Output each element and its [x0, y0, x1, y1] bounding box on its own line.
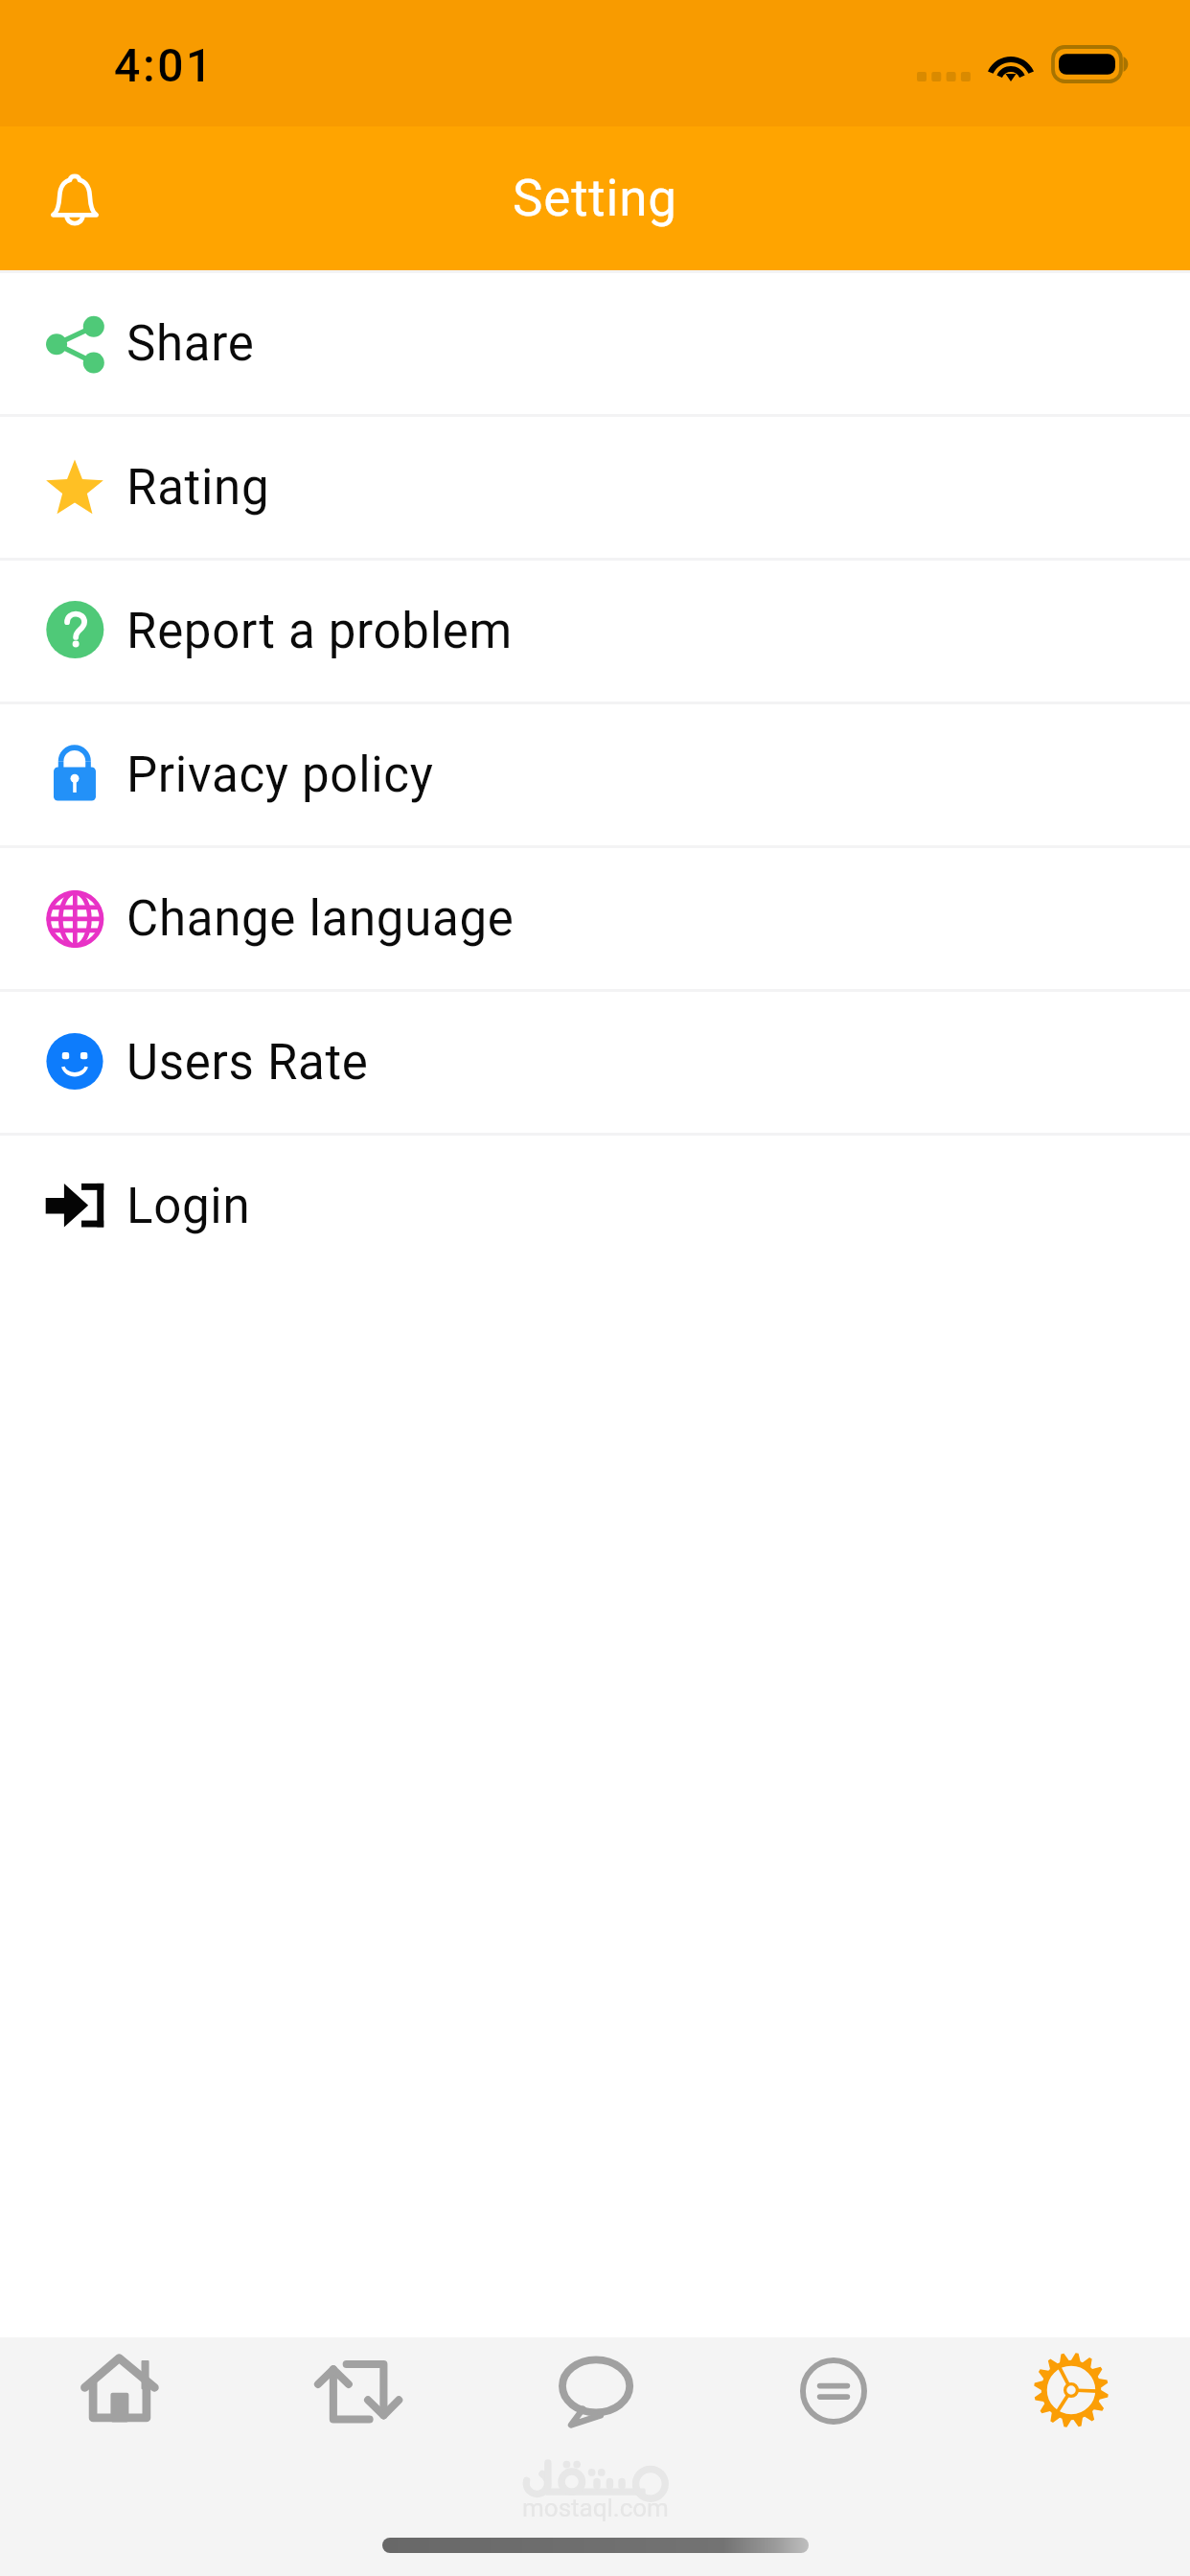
button[interactable]: Share — [0, 273, 1190, 414]
button[interactable]: Notifications — [24, 149, 125, 249]
button[interactable]: Users Rate — [0, 992, 1190, 1133]
button[interactable]: Messages — [477, 2337, 715, 2441]
button[interactable]: Rating — [0, 417, 1190, 558]
staticText: mostaql.com — [522, 2494, 669, 2522]
staticText: Login — [126, 1178, 251, 1235]
staticText: 4:01 — [114, 38, 215, 92]
staticText: Users Rate — [126, 1034, 369, 1092]
button[interactable]: Sync — [239, 2337, 477, 2441]
button[interactable]: Login — [0, 1136, 1190, 1276]
button[interactable]: Home — [0, 2337, 239, 2441]
button[interactable]: Report a problem — [0, 561, 1190, 701]
staticText: Change language — [126, 890, 515, 948]
staticText: Rating — [126, 459, 270, 517]
button[interactable]: Privacy policy — [0, 704, 1190, 845]
staticText: Privacy policy — [126, 747, 434, 804]
staticText: Report a problem — [126, 603, 513, 660]
button[interactable]: Change language — [0, 848, 1190, 989]
button[interactable]: Settings — [952, 2337, 1190, 2441]
staticText: Share — [126, 315, 255, 373]
staticText: Setting — [513, 169, 677, 228]
button[interactable]: Menu — [715, 2337, 952, 2441]
